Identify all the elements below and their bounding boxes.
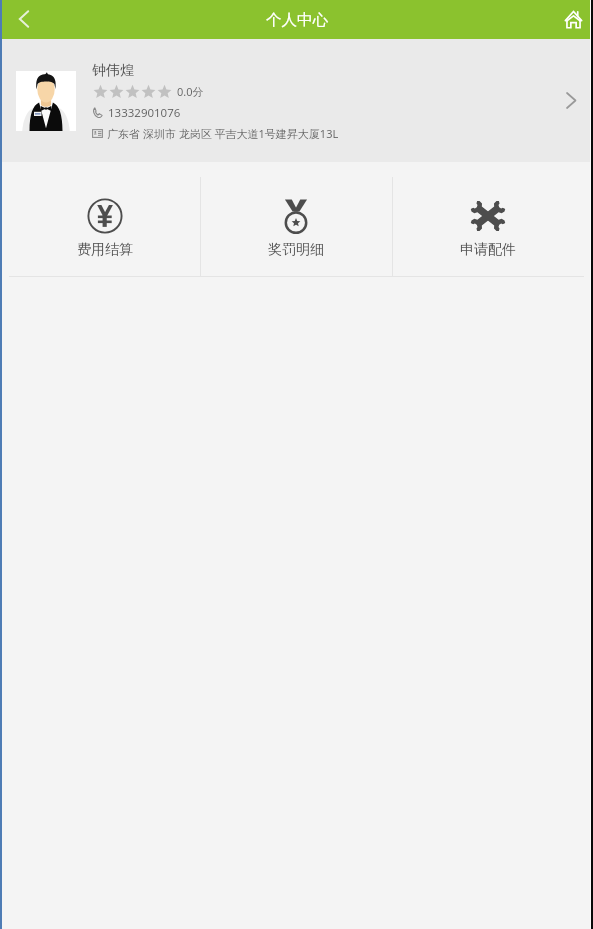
- staticText: 13332901076: [108, 105, 181, 121]
- button[interactable]: 费用结算: [9, 162, 200, 277]
- button[interactable]: Home: [553, 0, 593, 39]
- staticText: 个人中心: [266, 10, 328, 30]
- staticText: 奖罚明细: [268, 241, 324, 259]
- button[interactable]: 申请配件: [392, 162, 584, 277]
- staticText: 钟伟煌: [92, 62, 134, 80]
- staticText: 费用结算: [77, 241, 133, 259]
- button[interactable]: 钟伟煌: [0, 39, 593, 162]
- button[interactable]: Back: [0, 0, 44, 39]
- staticText: 申请配件: [460, 241, 516, 259]
- staticText: 广东省 深圳市 龙岗区 平吉大道1号建昇大厦13L: [107, 126, 339, 141]
- button[interactable]: 奖罚明细: [200, 162, 392, 277]
- staticText: 0.0分: [177, 84, 204, 99]
